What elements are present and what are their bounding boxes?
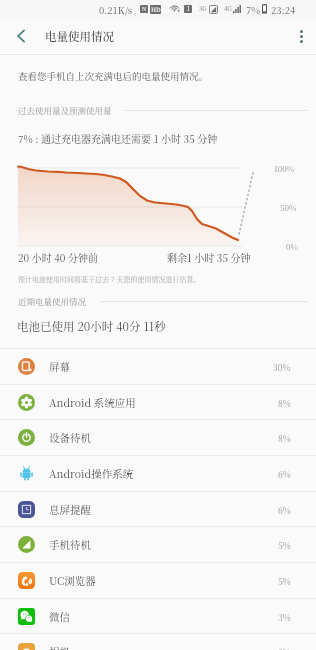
button[interactable]: 相机	[0, 634, 316, 650]
staticText: 6%	[278, 468, 291, 480]
staticText: 屏幕	[49, 359, 70, 374]
staticText: 4G	[224, 4, 232, 13]
staticText: 7% : 通过充电器充满电还需要 1 小时 35 分钟	[18, 131, 218, 145]
staticText: 3%	[278, 611, 291, 623]
button[interactable]: Back	[6, 21, 36, 51]
button[interactable]: More options	[286, 21, 316, 51]
staticText: 50%	[280, 202, 297, 213]
staticText: 电量使用情况	[45, 28, 114, 45]
staticText: 7%	[246, 3, 260, 17]
staticText: 8%	[278, 432, 291, 444]
button[interactable]: 微信	[0, 599, 316, 634]
button[interactable]: UC浏览器	[0, 563, 316, 598]
staticText: 电池已使用 20小时 40分 11秒	[17, 318, 166, 335]
staticText: 0.21K/s	[99, 3, 133, 17]
staticText: 2%	[278, 646, 291, 650]
staticText: 20 小时 40 分钟前	[18, 250, 98, 264]
staticText: N	[142, 5, 147, 13]
staticText: 100%	[274, 163, 295, 174]
staticText: 预计电池使用时间将基于过去 7 天您的使用情况进行估算。	[18, 274, 201, 284]
staticText: HD	[151, 5, 161, 14]
staticText: 8%	[278, 397, 291, 409]
staticText: 剩余1 小时 35 分钟	[167, 250, 251, 264]
staticText: 6%	[278, 504, 291, 516]
staticText: Android 系统应用	[49, 395, 136, 410]
button[interactable]: Android 系统应用	[0, 385, 316, 420]
staticText: 5%	[278, 539, 291, 551]
staticText: 30%	[273, 361, 291, 373]
staticText: 设备待机	[49, 430, 91, 445]
button[interactable]: 手机待机	[0, 527, 316, 562]
button[interactable]: 设备待机	[0, 420, 316, 455]
staticText: 近期电量使用情况	[18, 295, 87, 307]
button[interactable]: 息屏提醒	[0, 492, 316, 527]
staticText: 手机待机	[49, 537, 91, 552]
staticText: 查看您手机自上次充满电后的电量使用情况。	[18, 69, 209, 83]
staticText: 1	[187, 5, 190, 13]
staticText: 微信	[49, 609, 70, 624]
staticText: Android操作系统	[49, 466, 134, 481]
staticText: 3G	[199, 4, 207, 13]
staticText: 0%	[286, 241, 298, 252]
staticText: 5%	[278, 575, 291, 587]
button[interactable]: Android操作系统	[0, 456, 316, 491]
staticText: 息屏提醒	[49, 502, 91, 517]
staticText: 23:24	[271, 3, 296, 17]
staticText: 相机	[49, 644, 70, 650]
staticText: 过去使用量及预测使用量	[18, 104, 112, 116]
staticText: UC浏览器	[49, 573, 96, 588]
button[interactable]: 屏幕	[0, 349, 316, 384]
